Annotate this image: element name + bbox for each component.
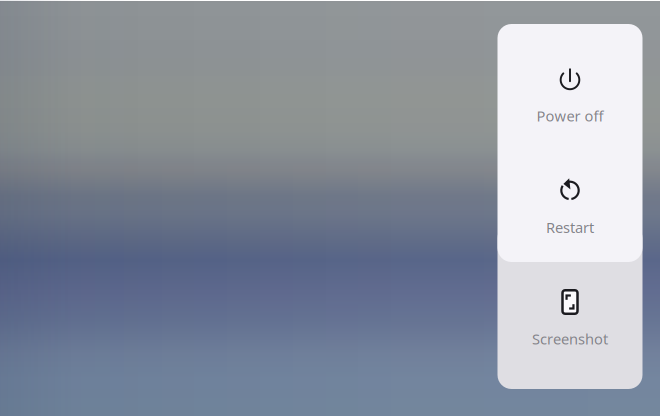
button[interactable]: Power off [497, 24, 642, 143]
staticText: Screenshot [532, 329, 608, 348]
button[interactable]: Screenshot [497, 262, 642, 389]
staticText: Restart [546, 218, 594, 237]
staticText: Power off [536, 106, 603, 125]
button[interactable]: Restart [497, 143, 642, 262]
